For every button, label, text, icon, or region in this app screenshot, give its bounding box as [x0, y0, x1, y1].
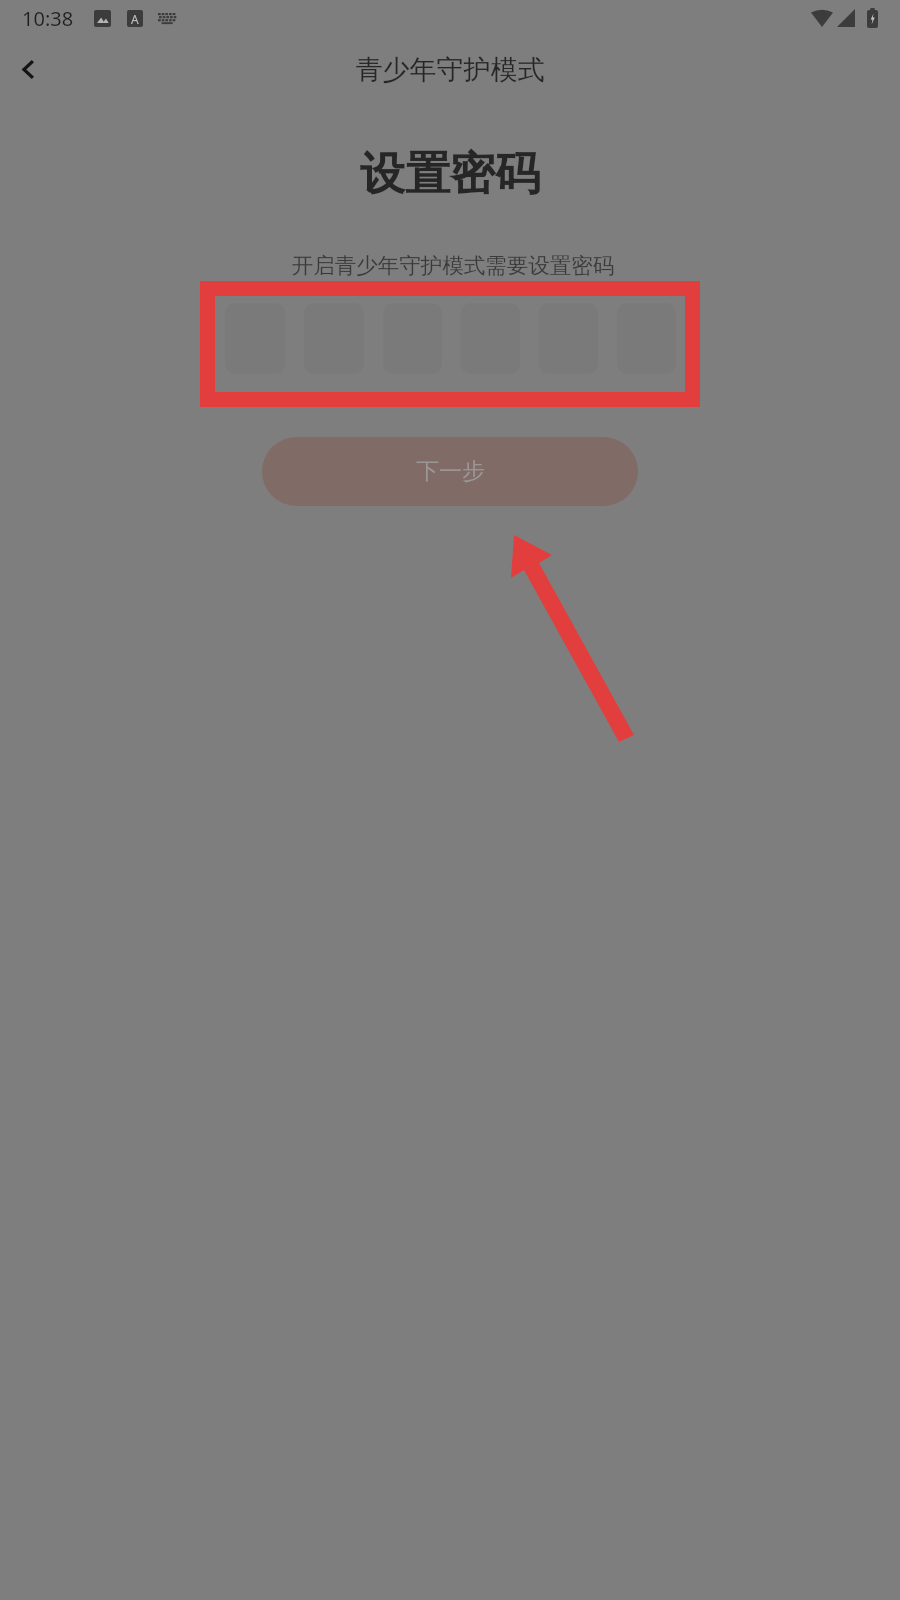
staticText: 下一步	[416, 457, 485, 486]
staticText: A	[131, 11, 139, 27]
button[interactable]: Back	[0, 44, 52, 96]
staticText: 设置密码	[0, 146, 900, 203]
button[interactable]: 下一步	[262, 437, 638, 506]
staticText: 青少年守护模式	[0, 53, 900, 87]
staticText: 开启青少年守护模式需要设置密码	[3, 252, 900, 279]
staticText: 10:38	[22, 5, 74, 32]
